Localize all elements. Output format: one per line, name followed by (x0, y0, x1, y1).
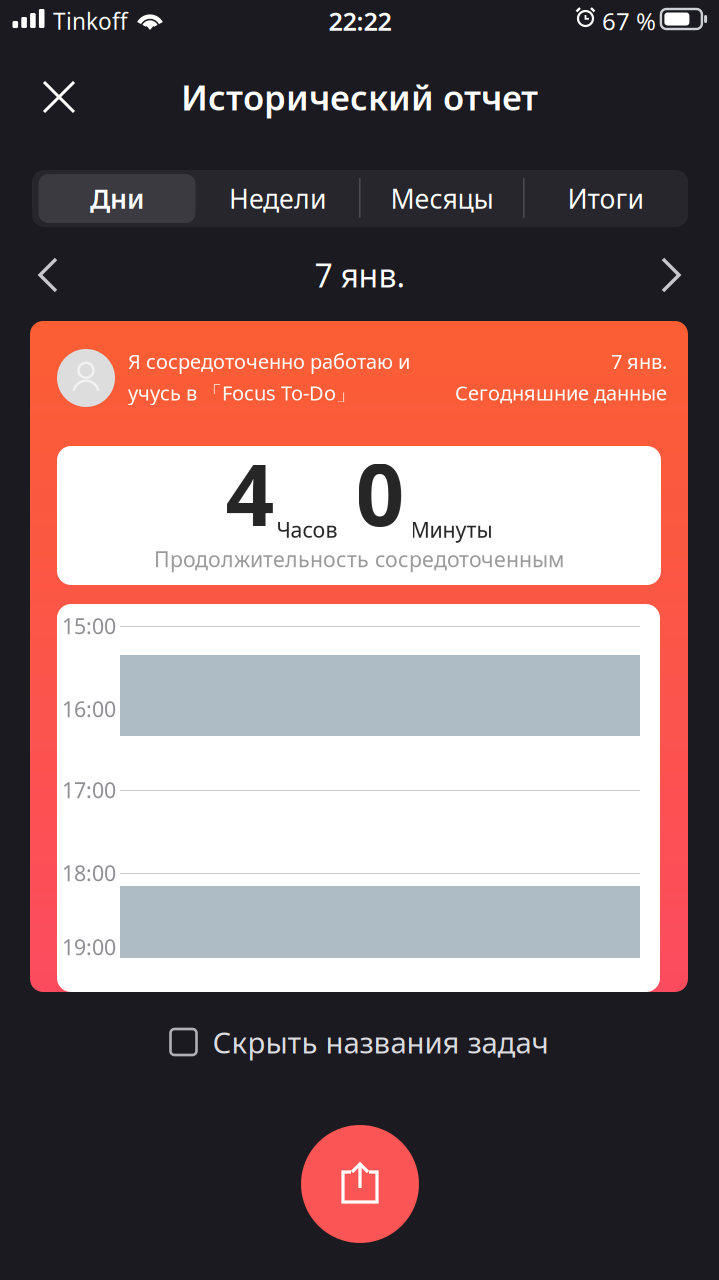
staticText: Скрыть названия задач (212, 1022, 548, 1061)
staticText: Продолжительность сосредоточенным (154, 545, 564, 573)
button[interactable]: Недели (196, 170, 360, 227)
staticText: Исторический отчет (181, 74, 538, 120)
staticText: 15:00 (62, 612, 116, 640)
button[interactable]: Скрыть названия задач (158, 1014, 560, 1070)
staticText: 16:00 (62, 695, 116, 723)
staticText: Tinkoff (53, 6, 128, 36)
button[interactable]: Previous day (16, 246, 80, 304)
button[interactable]: Итоги (524, 170, 688, 227)
staticText: Часов (276, 515, 337, 544)
staticText: 0 (355, 436, 404, 550)
button[interactable]: Share (295, 1119, 425, 1249)
staticText: Дни (90, 181, 144, 216)
button[interactable]: Месяцы (360, 170, 524, 227)
staticText: 4 (225, 436, 274, 550)
staticText: 7 янв. (314, 254, 405, 296)
staticText: 7 янв. (611, 348, 667, 374)
staticText: 18:00 (62, 859, 116, 887)
staticText: Я сосредоточенно работаю и (128, 348, 410, 374)
staticText: 67 % (602, 5, 656, 37)
button[interactable]: Close (26, 64, 92, 130)
staticText: Недели (229, 181, 327, 216)
staticText: 19:00 (62, 933, 116, 961)
staticText: Месяцы (390, 181, 493, 216)
button[interactable]: Дни (35, 170, 199, 227)
staticText: Итоги (567, 181, 644, 216)
staticText: 22:22 (328, 4, 391, 38)
staticText: Минуты (410, 515, 492, 544)
staticText: Сегодняшние данные (455, 379, 667, 406)
button[interactable]: Next day (639, 246, 703, 304)
staticText: 17:00 (62, 776, 116, 804)
staticText: учусь в 「Focus To-Do」 (128, 379, 356, 406)
